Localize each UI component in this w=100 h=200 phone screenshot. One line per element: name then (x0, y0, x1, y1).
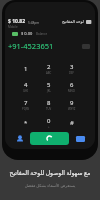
staticText: WXYZ (68, 107, 76, 111)
staticText: TUV (46, 107, 52, 111)
button[interactable]: 1 (15, 60, 37, 78)
button[interactable]: 6 (60, 78, 83, 96)
staticText: $ 0.00 (21, 31, 33, 36)
button[interactable]: 8 (37, 96, 60, 114)
button[interactable]: Contacts (13, 132, 26, 145)
staticText: 4 (24, 81, 28, 89)
staticText: MNO (68, 89, 75, 93)
staticText: يستعرض الأسماء بشكل مفصل (0, 183, 100, 188)
staticText: ABC (46, 71, 52, 75)
staticText: JKL (47, 89, 51, 93)
staticText: 8 (47, 99, 51, 107)
staticText: مع سهولة الوصول للوحة المفاتيح (0, 169, 100, 177)
staticText: 7 (24, 99, 28, 107)
staticText: + (48, 125, 50, 129)
button[interactable]: Call (30, 132, 69, 145)
staticText: DEF (69, 71, 75, 75)
button[interactable]: Video call (74, 132, 87, 145)
button[interactable]: 9 (60, 96, 83, 114)
staticText: 5 (47, 81, 51, 89)
staticText: $ 10.82 (8, 18, 26, 25)
button[interactable]: 7 (15, 96, 37, 114)
staticText: Mobile (8, 25, 18, 29)
staticText: 2 (47, 63, 51, 71)
staticText: 3 (70, 63, 74, 71)
staticText: PQRS (22, 107, 30, 111)
staticText: 5:48pm (28, 21, 40, 25)
button[interactable]: Backspace (80, 42, 91, 50)
button[interactable]: 5 (37, 78, 60, 96)
button[interactable]: 4 (15, 78, 37, 96)
button[interactable]: # (60, 114, 83, 132)
staticText: # (70, 119, 74, 127)
staticText: +91-4523651 (8, 41, 54, 51)
staticText: لوحة المفاتيح (62, 19, 84, 24)
staticText: 6 (70, 81, 74, 89)
staticText: 1 (24, 65, 28, 73)
button[interactable]: 3 (60, 60, 83, 78)
staticText: 0 (47, 117, 51, 125)
button[interactable]: 2 (37, 60, 60, 78)
button[interactable]: * (15, 114, 37, 132)
staticText: * (24, 119, 28, 127)
staticText: GHI (23, 89, 29, 93)
button[interactable]: 0 (37, 114, 60, 132)
staticText: Balance (36, 32, 48, 36)
staticText: 9 (70, 99, 74, 107)
